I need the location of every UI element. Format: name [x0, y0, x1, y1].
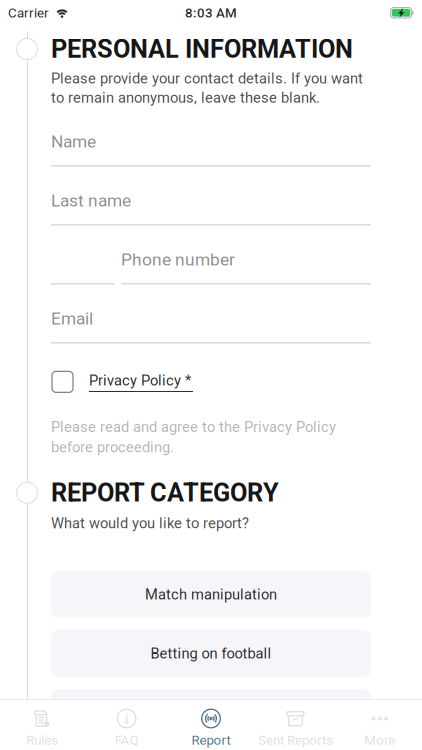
staticText: Name	[51, 131, 96, 152]
staticText: Privacy Policy *	[89, 372, 191, 389]
staticText: What would you like to report?	[51, 515, 249, 532]
button[interactable]: Other	[51, 689, 371, 736]
button[interactable]: More	[338, 699, 422, 750]
staticText: Rules	[26, 732, 58, 748]
staticText: Other	[193, 704, 229, 721]
button[interactable]: Sent Reports	[253, 699, 338, 750]
staticText: Please provide your contact details. If …	[51, 70, 363, 106]
button[interactable]: Match manipulation	[51, 571, 371, 618]
staticText: 8:03 AM	[185, 5, 237, 21]
staticText: More	[364, 732, 395, 748]
staticText: REPORT CATEGORY	[51, 478, 279, 508]
button[interactable]: Rules	[0, 699, 84, 750]
staticText: Please read and agree to the Privacy Pol…	[51, 418, 336, 456]
staticText: Report	[191, 732, 230, 748]
staticText: FAQ	[115, 732, 139, 748]
staticText: Carrier	[8, 5, 49, 21]
button[interactable]: Privacy Policy *	[89, 372, 193, 392]
staticText: Email	[51, 308, 93, 329]
staticText: Last name	[51, 190, 131, 211]
button[interactable]: Betting on football	[51, 630, 371, 677]
staticText: Betting on football	[150, 645, 271, 662]
button[interactable]	[52, 371, 73, 392]
staticText: Sent Reports	[258, 732, 333, 748]
staticText: Phone number	[121, 249, 235, 270]
button[interactable]: Report	[169, 699, 253, 750]
staticText: PERSONAL INFORMATION	[51, 34, 353, 64]
button[interactable]: FAQ	[84, 699, 169, 750]
staticText: Match manipulation	[145, 586, 277, 603]
